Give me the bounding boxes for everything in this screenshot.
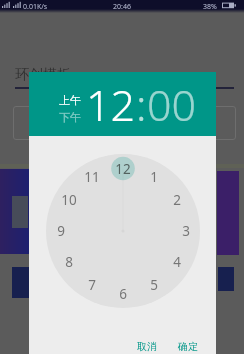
staticText: : <box>136 75 147 134</box>
staticText: 确定 <box>178 340 198 353</box>
staticText: 5 <box>150 276 158 294</box>
button[interactable]: 确定 <box>171 332 205 354</box>
button[interactable]: 下午 <box>59 110 81 124</box>
staticText: 7 <box>88 276 96 294</box>
staticText: 下午 <box>59 110 81 124</box>
staticText: 10 <box>61 191 77 209</box>
staticText: 6 <box>119 285 127 303</box>
staticText: 0.01K/s <box>23 2 48 12</box>
button[interactable]: 取消 <box>130 332 164 354</box>
button[interactable]: 8 <box>58 253 80 271</box>
staticText: 38% <box>203 2 217 12</box>
button[interactable]: 11 <box>81 168 103 186</box>
staticText: 2 <box>173 191 181 209</box>
staticText: 20:46 <box>113 2 131 12</box>
button[interactable]: 1 <box>143 168 165 186</box>
button[interactable]: 4 <box>166 253 188 271</box>
button[interactable]: 12 <box>86 75 136 134</box>
button[interactable]: 2 <box>166 191 188 209</box>
staticText: 环创模板 <box>15 66 71 84</box>
staticText: 上午 <box>59 93 81 107</box>
button[interactable]: 12 <box>112 160 134 178</box>
button[interactable]: 00 <box>147 75 197 134</box>
button[interactable]: 3 <box>175 222 197 240</box>
button[interactable]: 9 <box>50 222 72 240</box>
staticText: 8 <box>65 253 73 271</box>
button[interactable]: 6 <box>112 285 134 303</box>
staticText: 9 <box>57 222 65 240</box>
button[interactable]: 10 <box>58 191 80 209</box>
staticText: 1 <box>150 168 158 186</box>
staticText: 取消 <box>137 340 157 353</box>
button[interactable]: 上午 <box>59 93 81 107</box>
button[interactable]: 7 <box>81 276 103 294</box>
staticText: 12 <box>86 75 136 134</box>
staticText: 4 <box>173 253 181 271</box>
staticText: 3 <box>182 222 190 240</box>
staticText: 11 <box>84 168 100 186</box>
button[interactable]: 5 <box>143 276 165 294</box>
staticText: 12 <box>115 160 131 178</box>
staticText: 00 <box>147 75 197 134</box>
